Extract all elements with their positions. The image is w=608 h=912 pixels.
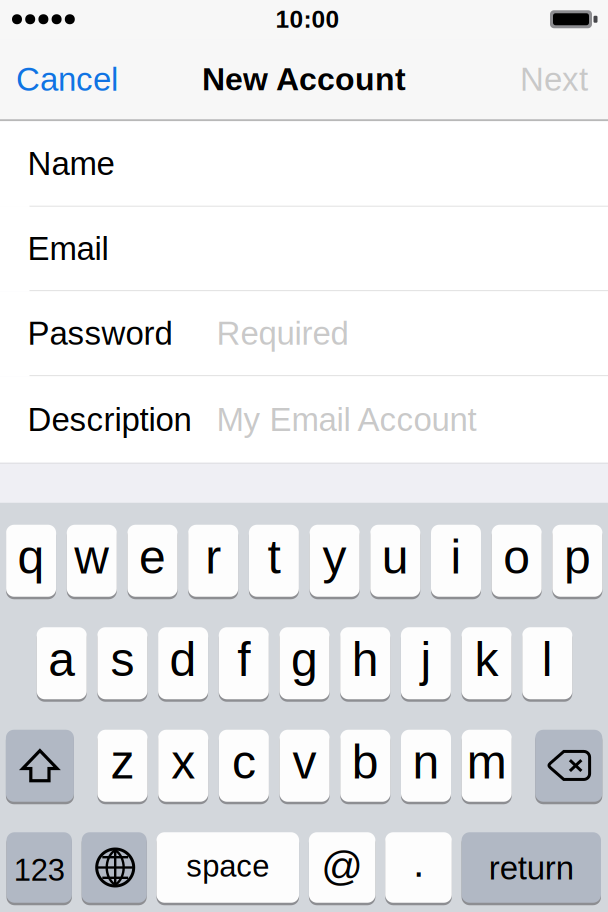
button[interactable]: . [385,832,452,905]
button[interactable]: @ [309,832,375,905]
button[interactable]: x [158,730,208,804]
button[interactable]: z [97,730,147,804]
staticText: h [352,632,379,686]
staticText: x [171,735,195,788]
staticText: l [542,632,553,686]
staticText: . [413,840,424,885]
button[interactable]: v [280,730,330,804]
button[interactable]: Delete [535,730,602,804]
staticText: Name [27,145,114,182]
button[interactable]: Next keyboard [82,832,147,905]
staticText: f [237,632,250,686]
button[interactable]: o [492,525,542,599]
button[interactable]: l [522,627,572,702]
staticText: Description [27,401,191,438]
staticText: i [450,530,461,583]
button[interactable]: k [462,627,512,702]
button[interactable]: return [462,832,601,905]
staticText: e [139,530,166,583]
staticText: j [420,632,431,686]
button[interactable]: Cancel [0,39,132,119]
staticText: Cancel [16,61,118,98]
staticText: Password [27,315,172,352]
button[interactable]: space [156,832,299,905]
button[interactable]: Shift [6,730,74,804]
button[interactable]: y [310,525,360,599]
staticText: z [110,735,134,788]
staticText: n [412,735,439,788]
button[interactable]: m [462,730,512,804]
button[interactable]: u [370,525,420,599]
staticText: d [170,632,197,686]
button[interactable]: p [552,525,602,599]
button[interactable]: d [158,627,208,702]
button[interactable]: h [340,627,390,702]
button[interactable]: c [219,730,269,804]
staticText: 10:00 [275,6,339,33]
staticText: m [467,735,507,788]
button[interactable]: Next [506,39,608,119]
button[interactable]: j [401,627,451,702]
staticText: g [291,632,318,686]
button[interactable]: t [249,525,299,599]
staticText: c [232,735,256,788]
staticText: 123 [14,853,65,887]
button[interactable]: a [37,627,87,702]
button[interactable]: Description [0,376,608,463]
button[interactable]: Password [0,291,608,376]
button[interactable]: f [219,627,269,702]
staticText: Email [27,230,108,267]
staticText: p [564,530,591,583]
button[interactable]: g [279,627,329,702]
staticText: space [186,849,269,883]
staticText: k [475,632,499,686]
staticText: My Email Account [216,401,476,438]
button[interactable]: w [67,525,117,599]
staticText: y [323,530,347,583]
staticText: q [18,530,45,583]
button[interactable]: e [127,525,177,599]
staticText: t [267,530,280,583]
staticText: s [110,632,134,686]
staticText: b [352,735,379,788]
staticText: v [293,735,317,788]
button[interactable]: Email [0,207,608,291]
staticText: a [48,632,75,686]
button[interactable]: r [188,525,238,599]
button[interactable]: 123 [6,832,72,905]
staticText: Next [520,61,588,98]
button[interactable]: i [431,525,481,599]
staticText: w [74,530,109,583]
button[interactable]: n [401,730,451,804]
button[interactable]: q [6,525,56,599]
staticText: return [489,850,574,886]
button[interactable]: b [340,730,390,804]
staticText: u [382,530,409,583]
staticText: Required [216,315,348,352]
button[interactable]: s [97,627,147,702]
staticText: r [205,530,221,583]
staticText: @ [321,843,363,889]
button[interactable]: Name [0,121,608,207]
staticText: o [503,530,530,583]
staticText: New Account [202,61,406,97]
